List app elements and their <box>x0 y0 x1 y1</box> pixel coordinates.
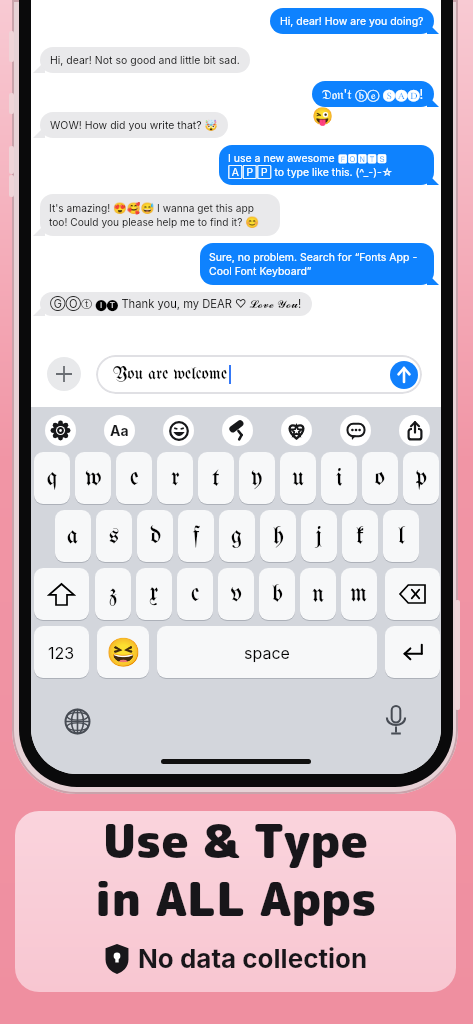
button[interactable]: v <box>218 568 254 620</box>
button[interactable]: i <box>321 452 357 504</box>
button[interactable]: I use a new awesome 🅵🅾🅽🆃🆂 🄰🄿🄿 to type li… <box>219 145 434 185</box>
staticText: z <box>109 582 117 607</box>
staticText: ⒼⓄⓣ 🅘🅣 Thank you, my DEAR ♡ 𝓛𝓸𝓿𝓮 𝓨𝓸𝓾! <box>50 297 302 311</box>
staticText: e <box>130 466 139 491</box>
staticText: l <box>398 524 405 549</box>
button[interactable]: Hi, dear! How are you doing? <box>270 8 434 34</box>
button[interactable]: r <box>157 452 193 504</box>
button[interactable]: Use & Type in ALL Apps <box>15 811 456 992</box>
staticText: WOW! How did you write that? 🤯 <box>50 119 218 132</box>
staticText: c <box>191 582 200 607</box>
button[interactable]: w <box>75 452 111 504</box>
button[interactable] <box>47 357 81 391</box>
button[interactable] <box>399 415 430 446</box>
button[interactable]: y <box>239 452 275 504</box>
button[interactable]: Sure, no problem. Search for “Fonts App … <box>200 243 434 285</box>
button[interactable] <box>163 415 194 446</box>
button[interactable]: Hi, dear! Not so good and little bit sad… <box>40 47 250 73</box>
staticText: It's amazing! 😍🥰😅 I wanna get this app t… <box>49 202 271 229</box>
button[interactable]: d <box>137 510 173 562</box>
button[interactable]: s <box>96 510 132 562</box>
button[interactable]: You are welcome <box>96 355 422 394</box>
staticText: a <box>67 524 79 549</box>
button[interactable]: 𝔇𝔬𝔫'𝔱 ⓑⓔ 🅢🅐🅓! <box>312 81 434 107</box>
staticText: y <box>251 466 263 491</box>
button[interactable]: WOW! How did you write that? 🤯 <box>40 112 228 138</box>
button[interactable]: It's amazing! 😍🥰😅 I wanna get this app t… <box>40 194 280 236</box>
staticText: d <box>150 524 161 549</box>
button[interactable]: z <box>95 568 131 620</box>
staticText: 123 <box>48 643 75 662</box>
button[interactable] <box>390 361 418 389</box>
staticText: 😜 <box>312 106 334 126</box>
staticText: k <box>356 524 364 549</box>
button[interactable]: b <box>259 568 295 620</box>
staticText: I use a new awesome 🅵🅾🅽🆃🆂 🄰🄿🄿 to type li… <box>228 152 425 179</box>
staticText: Aa <box>110 422 129 439</box>
staticText: u <box>292 466 305 491</box>
button[interactable]: l <box>383 510 419 562</box>
button[interactable]: h <box>260 510 296 562</box>
button[interactable]: o <box>362 452 398 504</box>
staticText: b <box>272 582 283 607</box>
button[interactable]: Aa <box>104 415 135 446</box>
staticText: space <box>244 643 290 662</box>
button[interactable]: e <box>116 452 152 504</box>
button[interactable]: ⒼⓄⓣ 🅘🅣 Thank you, my DEAR ♡ 𝓛𝓸𝓿𝓮 𝓨𝓸𝓾! <box>40 292 312 316</box>
staticText: o <box>375 466 385 491</box>
staticText: Hi, dear! How are you doing? <box>280 15 424 28</box>
button[interactable]: q <box>34 452 70 504</box>
button[interactable]: n <box>300 568 336 620</box>
button[interactable]: g <box>219 510 255 562</box>
button[interactable] <box>281 415 312 446</box>
button[interactable] <box>222 415 253 446</box>
staticText: h <box>273 524 284 549</box>
button[interactable] <box>34 568 89 620</box>
button[interactable]: u <box>280 452 316 504</box>
staticText: s <box>109 524 120 549</box>
staticText: m <box>350 582 368 607</box>
staticText: n <box>312 582 325 607</box>
staticText: x <box>149 582 159 607</box>
button[interactable]: a <box>55 510 91 562</box>
staticText: t <box>212 466 220 491</box>
staticText: f <box>193 524 199 549</box>
button[interactable]: m <box>341 568 377 620</box>
staticText: j <box>316 524 322 549</box>
button[interactable]: x <box>136 568 172 620</box>
button[interactable]: t <box>198 452 234 504</box>
staticText: No data collection <box>138 943 368 974</box>
button[interactable]: p <box>403 452 439 504</box>
staticText: q <box>47 466 58 491</box>
staticText: 😆 <box>106 636 141 669</box>
button[interactable]: 😆 <box>97 626 149 678</box>
staticText: Sure, no problem. Search for “Fonts App … <box>209 251 425 278</box>
button[interactable]: 123 <box>34 626 89 678</box>
button[interactable]: space <box>157 626 377 678</box>
staticText: 𝔇𝔬𝔫'𝔱 ⓑⓔ 🅢🅐🅓! <box>322 86 424 102</box>
button[interactable] <box>385 568 440 620</box>
staticText: w <box>85 466 102 491</box>
button[interactable]: k <box>342 510 378 562</box>
staticText: i <box>336 466 343 491</box>
button[interactable] <box>45 415 76 446</box>
button[interactable]: f <box>178 510 214 562</box>
button[interactable]: j <box>301 510 337 562</box>
staticText: Hi, dear! Not so good and little bit sad… <box>50 54 240 67</box>
staticText: p <box>416 466 427 491</box>
staticText: v <box>231 582 242 607</box>
button[interactable]: c <box>177 568 213 620</box>
staticText: You are welcome <box>113 366 228 384</box>
staticText: g <box>231 524 243 549</box>
staticText: Use & Type in ALL Apps <box>94 811 377 931</box>
staticText: r <box>171 466 180 491</box>
button[interactable] <box>385 626 440 678</box>
button[interactable] <box>340 415 371 446</box>
